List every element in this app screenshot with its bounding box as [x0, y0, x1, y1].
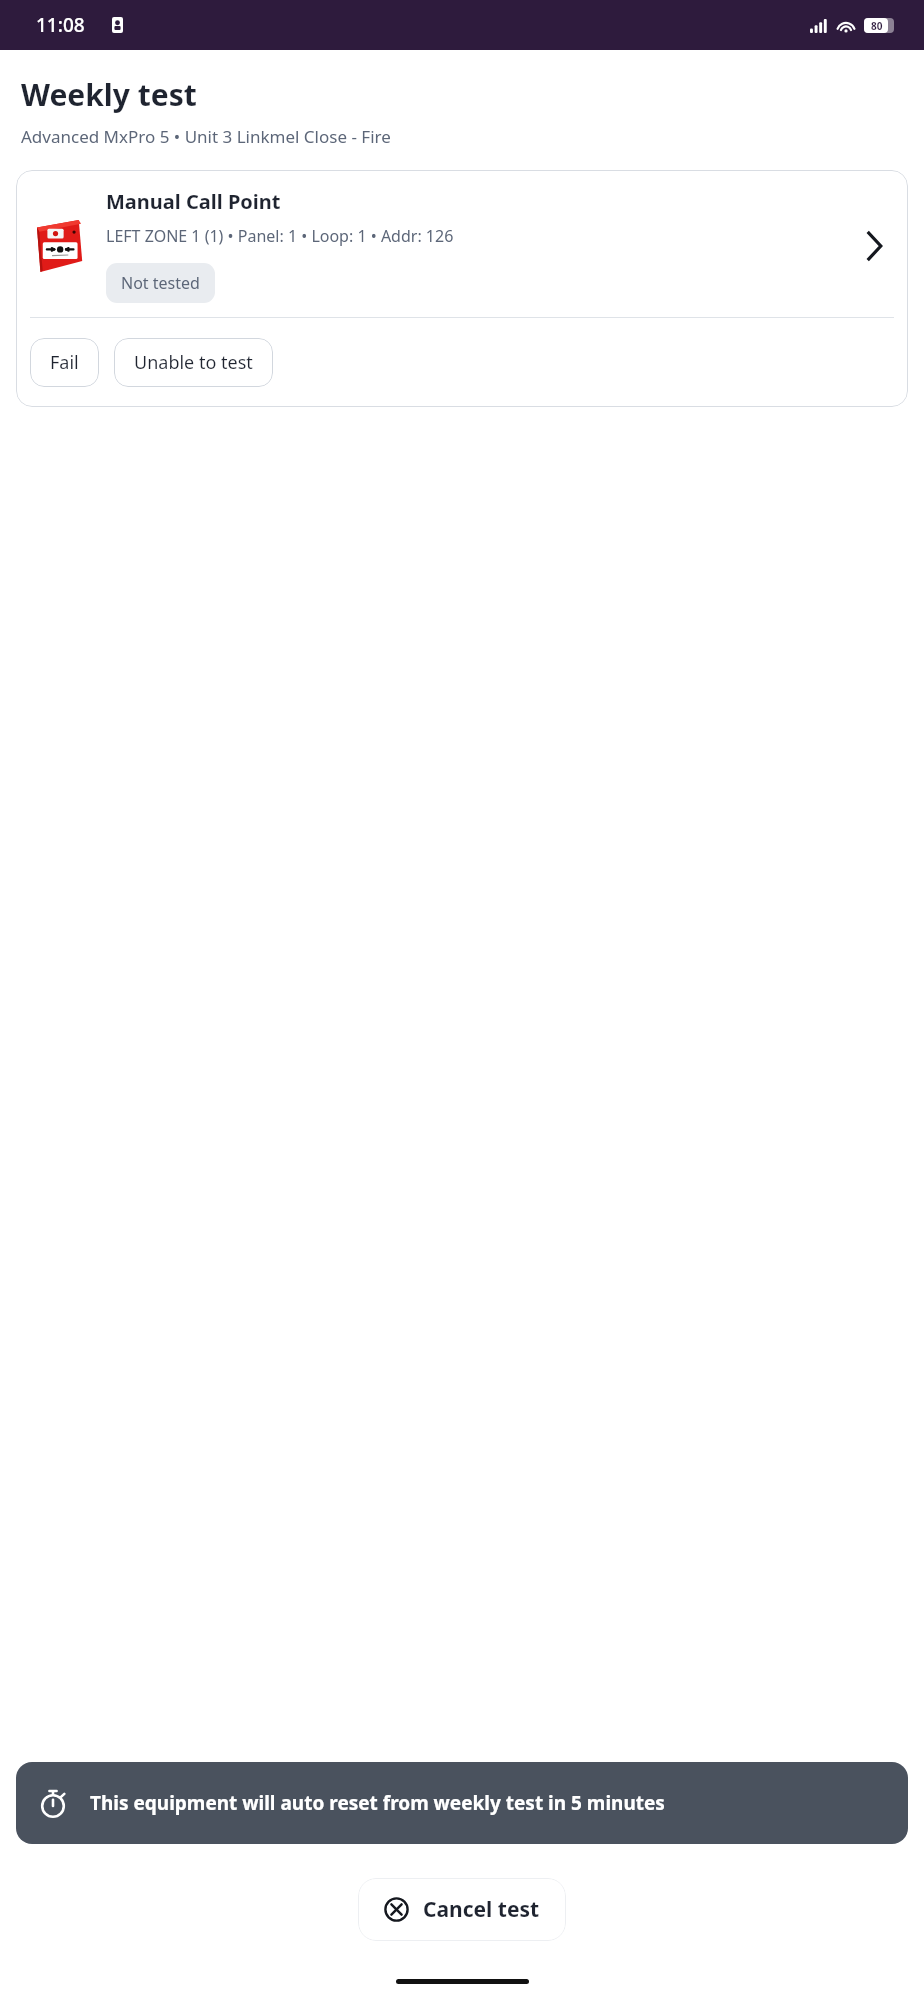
staticText: 80: [871, 19, 883, 33]
staticText: Manual Call Point: [106, 188, 281, 215]
staticText: Not tested: [121, 272, 200, 294]
staticText: Fail: [50, 350, 79, 375]
button[interactable]: Cancel test: [358, 1878, 566, 1941]
staticText: 11:08: [36, 12, 85, 38]
staticText: This equipment will auto reset from week…: [90, 1790, 886, 1816]
staticText: Unable to test: [134, 350, 253, 375]
staticText: Weekly test: [21, 74, 197, 115]
staticText: LEFT ZONE 1 (1) • Panel: 1 • Loop: 1 • A…: [106, 225, 454, 247]
staticText: Advanced MxPro 5 • Unit 3 Linkmel Close …: [21, 125, 391, 148]
button[interactable]: Open details: [854, 226, 894, 266]
staticText: Cancel test: [423, 1895, 540, 1924]
button[interactable]: Manual Call Point: [16, 170, 908, 317]
button[interactable]: Unable to test: [114, 338, 273, 387]
button[interactable]: Fail: [30, 338, 99, 387]
